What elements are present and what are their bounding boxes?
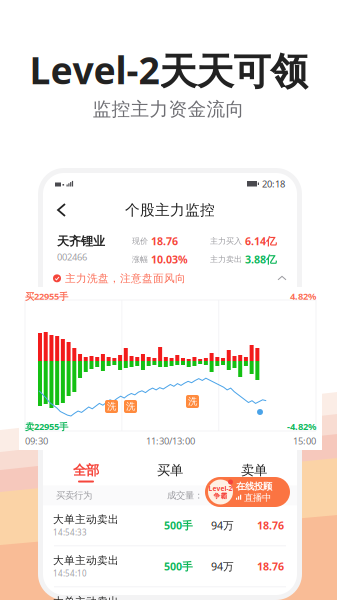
staticText: 主力卖出 xyxy=(210,254,242,264)
staticText: 涨幅 xyxy=(132,254,148,264)
staticText: 在线投顾 xyxy=(236,480,272,492)
staticText: -4.82% xyxy=(287,420,316,433)
staticText: 现价 xyxy=(132,236,148,246)
staticText: 18.76 xyxy=(257,559,284,573)
staticText: 大单主动卖出 xyxy=(53,513,119,526)
staticText: 买卖行为 xyxy=(56,490,92,501)
staticText: 11:30/13:00 xyxy=(146,435,195,447)
staticText: 成交额 xyxy=(214,490,241,501)
staticText: 94万 xyxy=(211,518,234,532)
staticText: 500手 xyxy=(164,518,193,532)
staticText: 大单主动卖出 xyxy=(53,595,119,600)
staticText: 大单主动卖出 xyxy=(53,554,119,567)
staticText: 18.76 xyxy=(257,518,284,532)
staticText: 500手 xyxy=(164,559,193,573)
staticText: 监控主力资金流向 xyxy=(92,98,244,121)
staticText: 002466 xyxy=(57,251,87,263)
staticText: 洗 xyxy=(107,401,116,412)
staticText: 个股主力监控 xyxy=(125,201,215,219)
staticText: 20:18 xyxy=(262,178,285,190)
staticText: 14:54:10 xyxy=(53,568,87,579)
button[interactable]: 大单主动卖出 xyxy=(43,546,297,587)
staticText: 14:54:33 xyxy=(53,527,87,538)
button[interactable]: Level-2 xyxy=(205,477,290,507)
staticText: 4.82% xyxy=(290,290,316,302)
button[interactable]: 大单主动卖出 xyxy=(43,505,297,546)
button[interactable]: 卖单 xyxy=(212,459,296,485)
staticText: 10.03% xyxy=(151,252,188,266)
staticText: 主力买入 xyxy=(210,236,242,246)
staticText: 卖22955手 xyxy=(25,420,68,433)
staticText: 买22955手 xyxy=(25,290,68,302)
staticText: 洗 xyxy=(126,401,135,412)
staticText: Level-2 xyxy=(208,484,232,493)
staticText: 6.14亿 xyxy=(245,234,277,248)
staticText: 卖单 xyxy=(241,462,267,478)
button[interactable]: 全部 xyxy=(44,459,128,485)
button[interactable]: Back xyxy=(51,199,73,221)
staticText: 18.76 xyxy=(151,234,178,248)
button[interactable]: 买单 xyxy=(128,459,212,485)
staticText: 主力洗盘，注意盘面风向 xyxy=(65,272,186,285)
staticText: 直播中 xyxy=(244,492,271,503)
staticText: 成交量： xyxy=(167,490,203,501)
staticText: 全部 xyxy=(73,462,99,478)
staticText: Level-2天天可领 xyxy=(29,45,307,95)
staticText: 争霸 xyxy=(213,492,227,500)
staticText: 3.88亿 xyxy=(245,252,277,266)
staticText: 买单 xyxy=(157,462,183,478)
staticText: 15:00 xyxy=(293,435,316,447)
staticText: 94万 xyxy=(211,559,234,573)
staticText: 09:30 xyxy=(25,435,48,447)
button[interactable]: 大单主动卖出 xyxy=(43,587,297,600)
staticText: 天齐锂业 xyxy=(57,234,105,249)
staticText: 洗 xyxy=(188,396,197,407)
